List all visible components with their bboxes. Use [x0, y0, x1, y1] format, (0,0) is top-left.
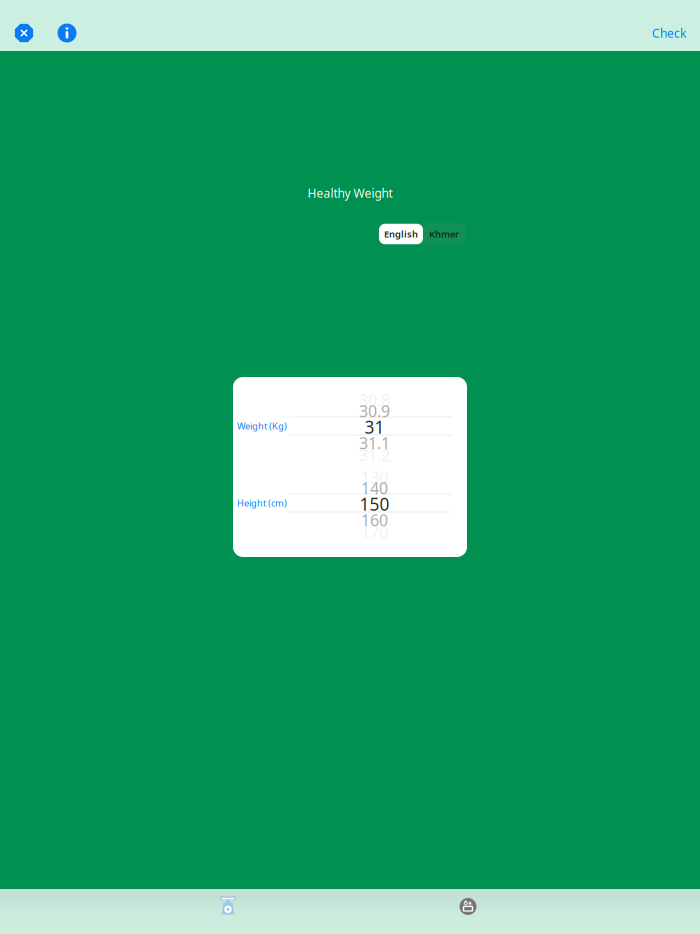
staticText: Healthy Weight	[307, 185, 392, 201]
button[interactable]: Calories	[433, 884, 503, 929]
staticText: Khmer	[429, 228, 459, 240]
staticText: 130	[361, 466, 388, 488]
staticText: Check	[652, 25, 686, 41]
button[interactable]: Khmer	[423, 224, 465, 244]
staticText: 160	[361, 509, 388, 531]
staticText: 150	[359, 492, 389, 515]
staticText: 31.2	[359, 444, 390, 466]
staticText: 170	[361, 521, 388, 543]
staticText: Height (cm)	[237, 497, 287, 509]
staticText: 31.1	[359, 432, 390, 454]
button[interactable]: English	[379, 224, 423, 244]
button[interactable]: Information	[57, 23, 76, 42]
button[interactable]: Weight scale	[193, 883, 263, 928]
staticText: 31	[364, 415, 384, 438]
staticText: 30.9	[359, 400, 390, 422]
staticText: Weight (Kg)	[237, 420, 287, 432]
staticText: 30.8	[359, 389, 390, 411]
staticText: 140	[361, 477, 388, 499]
staticText: English	[384, 228, 418, 240]
button[interactable]: Check	[596, 18, 686, 48]
button[interactable]: Close	[14, 23, 33, 42]
